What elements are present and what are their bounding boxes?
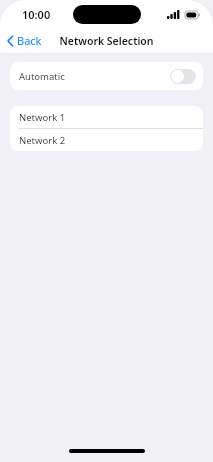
staticText: Automatic	[19, 70, 65, 83]
button[interactable]: Network 2	[10, 129, 203, 151]
staticText: Back	[17, 33, 42, 48]
button[interactable]: Automatic	[10, 62, 203, 90]
staticText: Network 1	[19, 111, 66, 124]
button[interactable]: Network 1	[10, 106, 203, 128]
staticText: 10:00	[22, 7, 51, 22]
staticText: Network Selection	[59, 34, 154, 48]
button[interactable]: Back	[0, 31, 48, 50]
button[interactable]: Automatic network selection toggle	[170, 69, 196, 84]
staticText: Network 2	[19, 134, 66, 147]
